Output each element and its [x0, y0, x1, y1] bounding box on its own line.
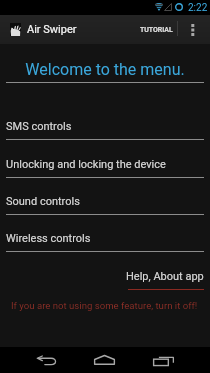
staticText: If you are not using some feature, turn …: [11, 300, 198, 311]
button[interactable]: Help, About app: [0, 251, 210, 290]
staticText: TUTORIAL: [140, 26, 173, 34]
button[interactable]: Recent apps: [133, 347, 194, 373]
button[interactable]: Sound controls: [0, 177, 210, 215]
staticText: Unlocking and locking the device: [6, 158, 166, 171]
staticText: Help, About app: [126, 270, 204, 283]
button[interactable]: SMS controls: [0, 83, 210, 140]
button[interactable]: Wireless controls: [0, 214, 210, 252]
staticText: Welcome to the menu.: [0, 60, 210, 79]
staticText: Air Swiper: [27, 23, 77, 36]
staticText: Wireless controls: [6, 232, 91, 245]
button[interactable]: Back: [16, 347, 77, 373]
button[interactable]: TUTORIAL: [133, 15, 179, 44]
button[interactable]: Home: [74, 347, 135, 373]
staticText: SMS controls: [6, 120, 72, 133]
button[interactable]: More options: [183, 15, 203, 44]
staticText: 2:22: [188, 2, 208, 14]
staticText: Sound controls: [6, 195, 80, 208]
button[interactable]: Unlocking and locking the device: [0, 139, 210, 178]
